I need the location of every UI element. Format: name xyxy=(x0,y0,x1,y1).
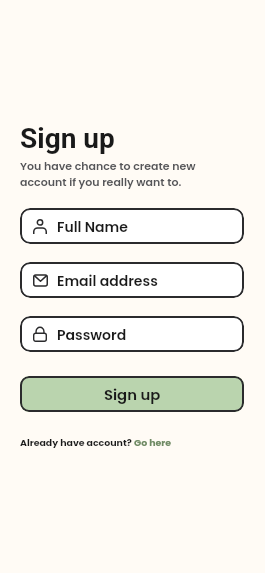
button[interactable]: Email address xyxy=(20,262,244,298)
staticText: Email address xyxy=(57,271,158,291)
staticText: Sign up xyxy=(20,122,115,155)
button[interactable]: Go here xyxy=(134,436,172,449)
staticText: Password xyxy=(57,325,127,345)
staticText: You have chance to create new account if… xyxy=(20,158,196,190)
button[interactable]: Full Name xyxy=(20,208,244,244)
staticText: Already have account? xyxy=(20,436,134,449)
button[interactable]: Sign up xyxy=(20,376,244,412)
staticText: Go here xyxy=(134,436,172,449)
staticText: Full Name xyxy=(57,217,128,237)
staticText: Sign up xyxy=(104,384,161,405)
button[interactable]: Password xyxy=(20,316,244,352)
